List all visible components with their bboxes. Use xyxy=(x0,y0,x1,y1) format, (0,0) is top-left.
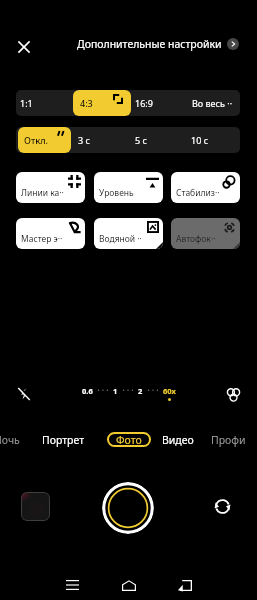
staticText: Стабилиз·· xyxy=(176,187,220,199)
button[interactable]: 1:1 xyxy=(16,90,73,116)
button[interactable]: Фото xyxy=(107,432,151,447)
staticText: Дополнительные настройки xyxy=(77,37,222,51)
button[interactable]: Видео xyxy=(162,432,194,447)
button[interactable]: Switch camera xyxy=(212,496,233,517)
button[interactable]: Портрет xyxy=(42,432,85,447)
button[interactable]: Мастер э·· xyxy=(16,218,85,249)
button[interactable]: Recent apps xyxy=(57,570,87,600)
staticText: Линии ка·· xyxy=(21,187,64,199)
button[interactable]: Стабилиз·· xyxy=(171,172,240,203)
staticText: Водяной ·· xyxy=(99,233,142,245)
staticText: Во весь ·· xyxy=(192,97,233,109)
staticText: Фото xyxy=(116,433,142,447)
button[interactable]: Во весь ·· xyxy=(188,90,240,116)
button[interactable]: Откл. xyxy=(18,127,71,153)
button[interactable]: Ночь xyxy=(0,432,20,447)
button[interactable]: 3 с xyxy=(72,127,129,153)
button[interactable]: Close xyxy=(12,35,35,58)
button[interactable]: Линии ка·· xyxy=(16,172,85,203)
button[interactable]: 60x xyxy=(163,386,176,396)
staticText: Мастер э·· xyxy=(21,233,63,245)
button[interactable]: Водяной ·· xyxy=(94,218,163,249)
button[interactable]: 5 с xyxy=(129,127,186,153)
staticText: 10 с xyxy=(191,134,209,146)
staticText: Откл. xyxy=(24,134,49,146)
staticText: Ночь xyxy=(0,433,20,447)
staticText: 16:9 xyxy=(135,97,153,109)
staticText: Автофок·· xyxy=(176,233,216,245)
button[interactable]: Home xyxy=(114,570,144,600)
button[interactable]: 1 xyxy=(113,386,118,396)
button[interactable]: Take photo xyxy=(102,482,154,534)
button[interactable]: Автофок·· xyxy=(171,218,240,249)
button[interactable]: Gallery xyxy=(21,492,50,521)
button[interactable]: 16:9 xyxy=(131,90,188,116)
button[interactable]: 4:3 xyxy=(73,90,131,116)
button[interactable]: Уровень xyxy=(94,172,163,203)
button[interactable]: 0.6 xyxy=(82,386,93,396)
button[interactable]: 10 с xyxy=(186,127,240,153)
button[interactable]: Flash off xyxy=(13,383,35,405)
staticText: 4:3 xyxy=(80,97,93,109)
staticText: 3 с xyxy=(78,134,90,146)
button[interactable]: Back xyxy=(170,570,200,600)
button[interactable]: Профи xyxy=(211,432,246,447)
staticText: 1:1 xyxy=(20,97,33,109)
button[interactable]: Дополнительные настройки xyxy=(77,37,239,51)
staticText: Профи xyxy=(211,433,246,447)
staticText: Портрет xyxy=(42,433,85,447)
button[interactable]: 2 xyxy=(138,386,143,396)
staticText: Видео xyxy=(162,433,194,447)
button[interactable]: Filters xyxy=(222,383,244,405)
staticText: Уровень xyxy=(99,187,134,199)
staticText: 5 с xyxy=(135,134,147,146)
